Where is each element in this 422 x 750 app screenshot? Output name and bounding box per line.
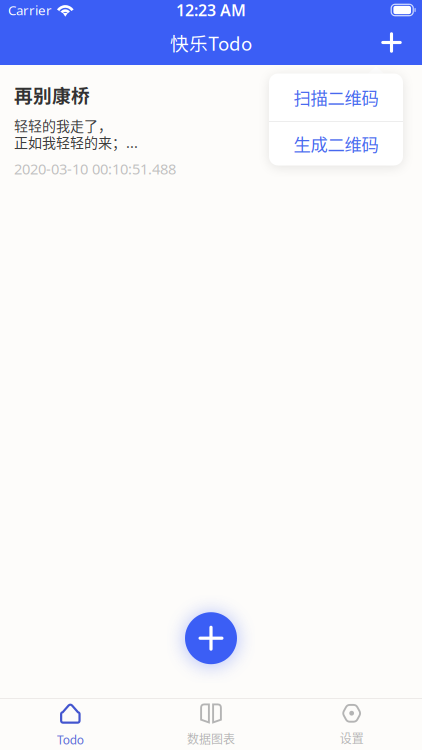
button[interactable]: 扫描二维码: [269, 73, 403, 121]
staticText: 再别康桥: [14, 81, 90, 108]
staticText: Todo: [57, 730, 84, 748]
staticText: 数据图表: [187, 730, 235, 747]
staticText: 快乐Todo: [170, 29, 252, 56]
button[interactable]: 数据图表: [141, 699, 281, 750]
button[interactable]: 生成二维码: [269, 122, 403, 165]
staticText: 12:23 AM: [176, 0, 246, 21]
staticText: 轻轻的我走了，: [14, 115, 112, 135]
button[interactable]: 再别康桥: [0, 65, 422, 193]
staticText: 扫描二维码: [293, 85, 378, 110]
staticText: 生成二维码: [293, 131, 378, 156]
staticText: 正如我轻轻的来；...: [14, 132, 138, 152]
staticText: Carrier: [8, 1, 52, 19]
button[interactable]: New todo: [185, 612, 237, 664]
staticText: 2020-03-10 00:10:51.488: [14, 159, 176, 179]
button[interactable]: Todo: [0, 699, 141, 750]
button[interactable]: Add: [369, 20, 413, 65]
button[interactable]: 设置: [281, 699, 422, 750]
staticText: 设置: [340, 729, 364, 747]
